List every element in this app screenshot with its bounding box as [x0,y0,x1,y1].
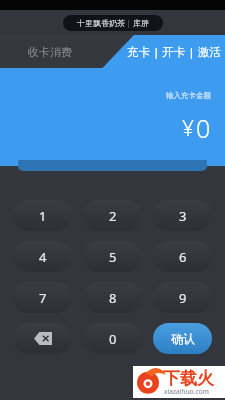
button[interactable]: 8 [83,282,142,313]
staticText: 2 [109,207,117,225]
button[interactable]: 4 [13,241,72,272]
staticText: 下载火 [163,368,214,389]
staticText: 输入充卡金额 [166,91,211,100]
staticText: 9 [179,289,187,307]
staticText: 4 [39,248,47,266]
staticText: 3 [179,207,187,225]
button[interactable]: 6 [153,241,212,272]
button[interactable]: 5 [83,241,142,272]
button[interactable]: 9 [153,282,212,313]
staticText: 8 [109,289,117,307]
staticText: 7 [39,289,47,307]
button[interactable]: 确认 [153,323,212,354]
button[interactable]: 1 [13,200,72,231]
button[interactable]: 0 [83,323,142,354]
staticText: xiazaihuo.com [164,387,209,396]
button[interactable]: 2 [83,200,142,231]
staticText: 收卡消费 [28,45,72,59]
button[interactable]: 3 [153,200,212,231]
button[interactable]: 十里飘香奶茶 [63,15,163,31]
staticText: 0 [109,330,117,348]
staticText: 1 [39,207,47,225]
staticText: 0 [196,111,211,145]
staticText: 充卡 | 开卡 | 激活 [127,44,221,60]
staticText: ｜ [125,18,133,28]
staticText: 5 [109,248,117,266]
button[interactable]: Backspace [13,323,72,354]
button[interactable]: 收卡消费 [0,35,100,68]
button[interactable]: 充卡 | 开卡 | 激活 [122,35,225,68]
staticText: 6 [179,248,187,266]
staticText: 库胖 [133,18,149,28]
staticText: 十里飘香奶茶 [77,18,125,28]
staticText: 确认 [171,331,195,346]
button[interactable]: 7 [13,282,72,313]
staticText: ¥ [182,114,194,143]
